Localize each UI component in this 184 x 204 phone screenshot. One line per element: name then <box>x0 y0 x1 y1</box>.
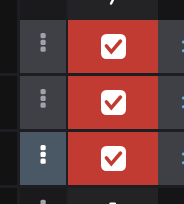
button[interactable]: Task completed <box>68 20 158 73</box>
button[interactable]: Reorder item <box>20 20 66 73</box>
button[interactable]: Task completed <box>68 132 158 185</box>
button[interactable] <box>68 0 158 20</box>
button[interactable]: More options <box>158 20 184 73</box>
button[interactable]: More options <box>158 132 184 185</box>
button[interactable]: Reorder item <box>20 76 66 129</box>
button[interactable]: Task completed <box>68 76 158 129</box>
button[interactable]: Task completed <box>101 90 126 115</box>
button[interactable]: Reorder item <box>20 188 66 204</box>
button[interactable]: Reorder item <box>20 132 66 185</box>
button[interactable] <box>68 188 158 204</box>
button[interactable]: Task completed <box>101 146 126 171</box>
button[interactable]: Task completed <box>101 34 126 59</box>
button[interactable]: More options <box>158 76 184 129</box>
